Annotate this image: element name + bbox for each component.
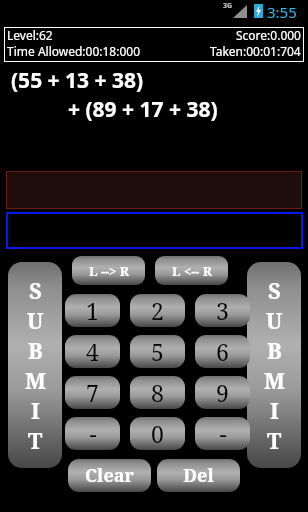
staticText: I — [31, 395, 40, 425]
button[interactable]: Minus — [195, 417, 250, 450]
staticText: S — [29, 275, 42, 305]
staticText: Clear — [85, 463, 134, 488]
staticText: M — [25, 365, 46, 395]
staticText: 8 — [151, 377, 164, 408]
staticText: S — [268, 275, 281, 305]
button[interactable]: Submit — [247, 262, 301, 468]
button[interactable]: 0 — [130, 417, 185, 450]
staticText: Taken:00:01:704 — [210, 43, 301, 59]
staticText: I — [270, 395, 279, 425]
staticText: B — [28, 335, 43, 365]
staticText: U — [27, 305, 44, 335]
staticText: L <-- R — [172, 262, 212, 280]
staticText: B — [267, 335, 282, 365]
staticText: 0 — [151, 418, 164, 449]
button[interactable]: Minus — [65, 417, 120, 450]
button[interactable]: 3 — [195, 294, 250, 327]
button[interactable]: 9 — [195, 376, 250, 409]
button[interactable]: 7 — [65, 376, 120, 409]
button[interactable]: Answer field — [6, 212, 303, 249]
staticText: 3 — [216, 295, 229, 326]
staticText: 9 — [216, 377, 229, 408]
button[interactable]: Del — [157, 459, 240, 492]
staticText: 1 — [86, 295, 99, 326]
staticText: Score:0.000 — [236, 27, 301, 43]
button[interactable]: 4 — [65, 335, 120, 368]
staticText: 3G — [223, 1, 233, 11]
staticText: 7 — [86, 377, 99, 408]
button[interactable]: 8 — [130, 376, 185, 409]
staticText: T — [267, 425, 282, 455]
staticText: L --> R — [89, 262, 129, 280]
button[interactable]: 2 — [130, 294, 185, 327]
button[interactable]: Submit — [8, 262, 62, 468]
button[interactable]: L <-- R — [155, 256, 228, 285]
button[interactable]: Clear — [68, 459, 151, 492]
staticText: - — [89, 418, 97, 449]
staticText: (55 + 13 + 38) — [11, 66, 144, 95]
staticText: - — [219, 418, 227, 449]
button[interactable]: L --> R — [72, 256, 145, 285]
staticText: 5 — [151, 336, 164, 367]
staticText: T — [28, 425, 43, 455]
staticText: 6 — [216, 336, 229, 367]
button[interactable]: 5 — [130, 335, 185, 368]
staticText: 4 — [86, 336, 99, 367]
button[interactable]: 1 — [65, 294, 120, 327]
staticText: 3:55 — [267, 2, 297, 22]
staticText: Time Allowed:00:18:000 — [7, 43, 141, 59]
staticText: + (89 + 17 + 38) — [68, 95, 218, 124]
staticText: U — [266, 305, 283, 335]
staticText: Level:62 — [7, 27, 53, 43]
staticText: M — [264, 365, 285, 395]
staticText: 2 — [151, 295, 164, 326]
staticText: Del — [183, 463, 214, 488]
button[interactable]: 6 — [195, 335, 250, 368]
